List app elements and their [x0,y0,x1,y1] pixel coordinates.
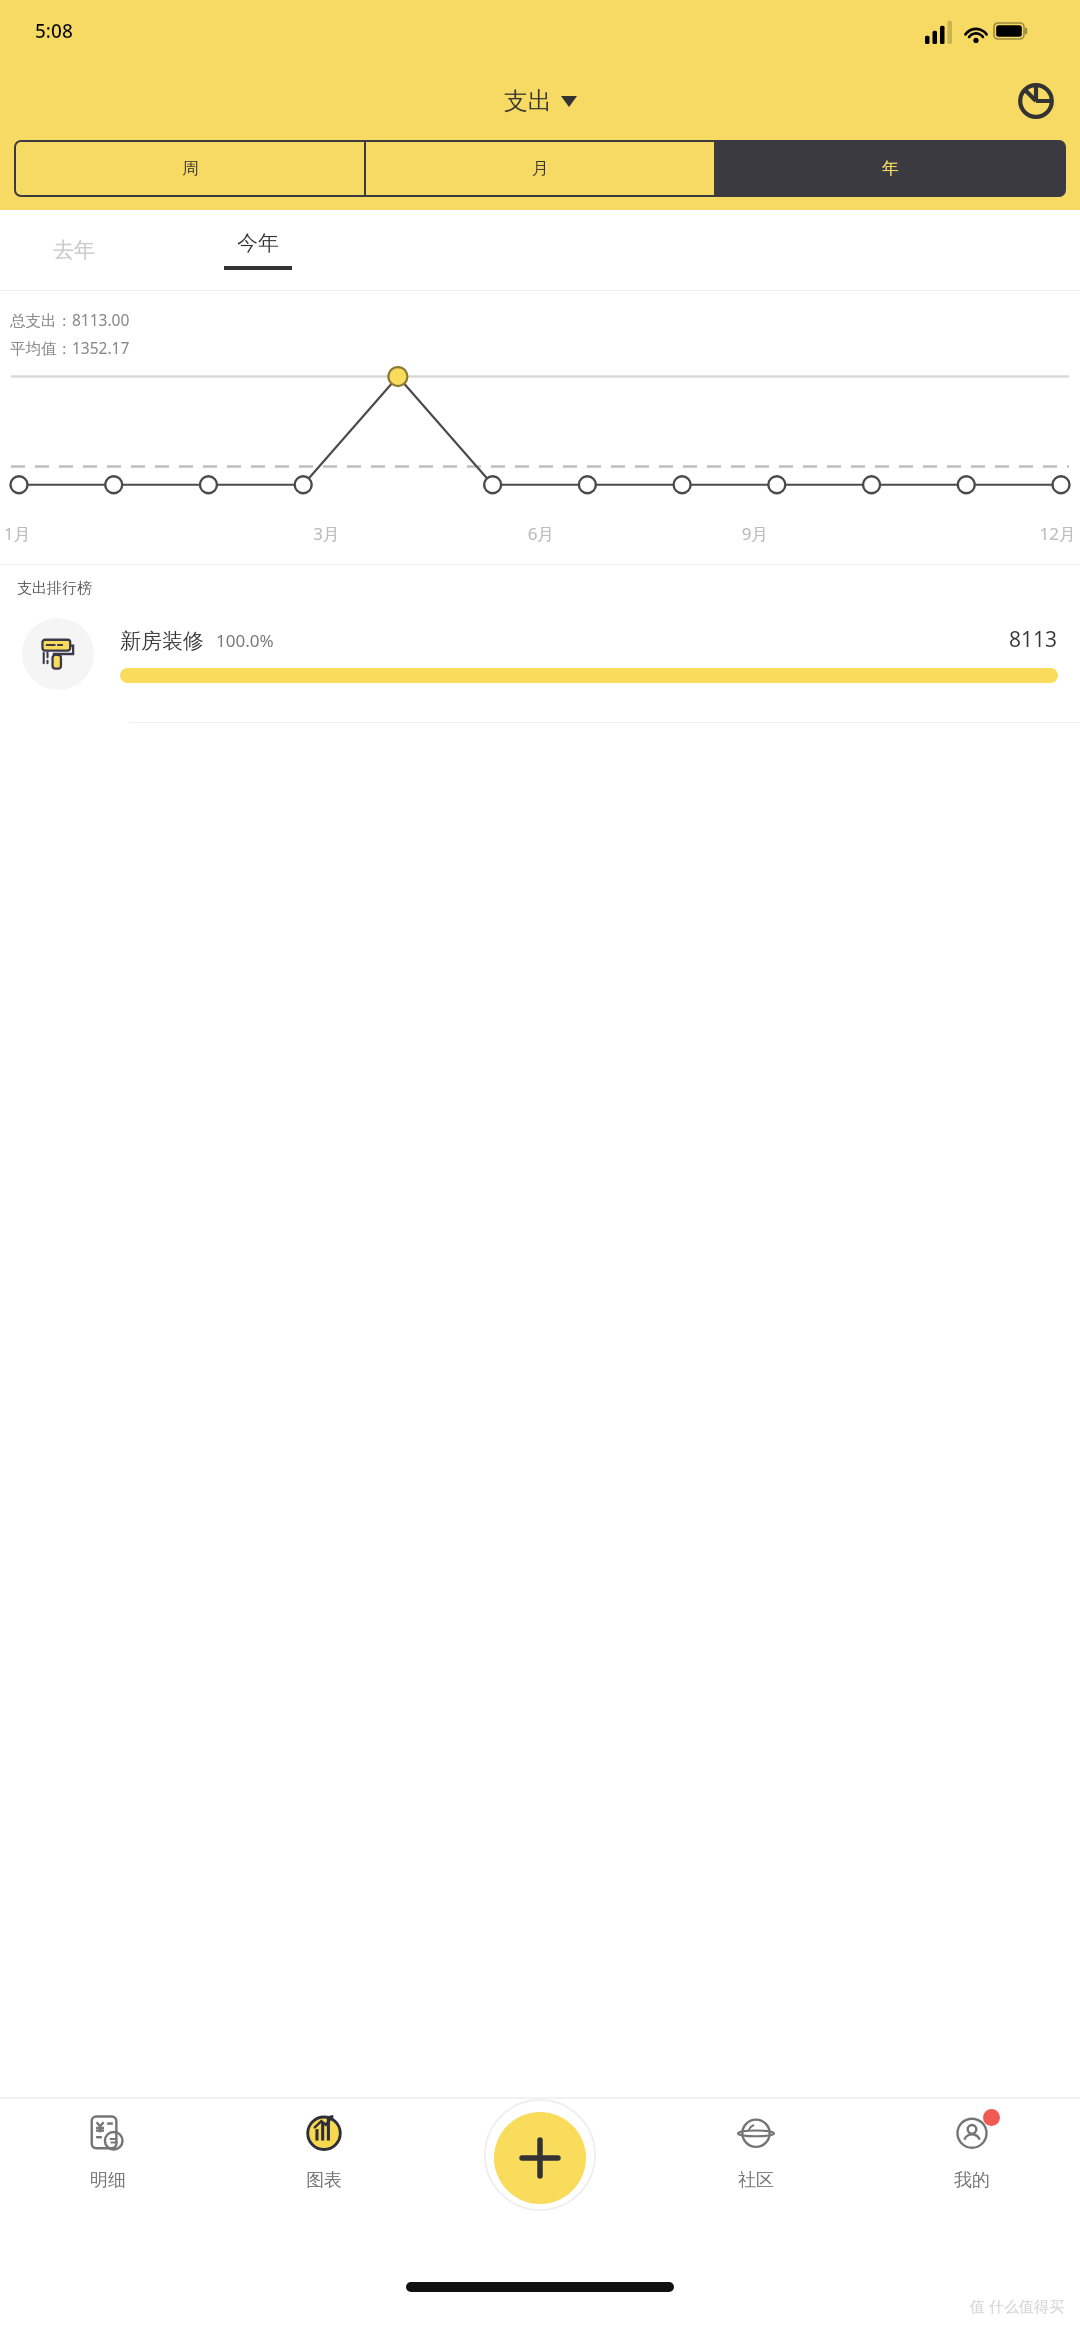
staticText: 9月 [648,522,862,545]
button[interactable]: 新房装修 [0,618,1080,723]
button[interactable]: 我的 [864,2113,1080,2272]
button[interactable]: 月 [366,142,714,195]
staticText: 1月 [4,522,219,545]
staticText: 我的 [954,2169,990,2192]
staticText: 明细 [90,2169,126,2192]
staticText: 社区 [738,2169,774,2192]
staticText: 3月 [219,522,434,545]
staticText: 月 [532,158,549,179]
button[interactable]: 年 [716,142,1064,195]
button[interactable]: 记账 Add record [494,2112,586,2204]
button[interactable]: 支出 [496,82,585,120]
button[interactable]: 明细 [0,2113,216,2272]
button[interactable]: 社区 [648,2113,864,2272]
button[interactable]: 图表 [216,2113,432,2272]
staticText: 今年 [237,230,279,256]
staticText: 5:08 [35,18,73,44]
button[interactable]: 今年 [194,210,322,290]
button[interactable]: Pie chart statistics [1010,75,1062,127]
staticText: 周 [182,158,199,179]
staticText: 100.0% [216,629,274,652]
staticText: 8113 [1009,625,1058,654]
staticText: 去年 [53,237,95,263]
button[interactable]: 周 [16,142,364,195]
staticText: 新房装修 [120,628,204,654]
staticText: 支出 [504,86,552,116]
button[interactable]: 去年 [10,210,138,290]
staticText: 平均值：1352.17 [10,337,130,358]
staticText: 总支出：8113.00 [10,309,130,330]
staticText: 图表 [306,2169,342,2192]
staticText: 值 什么值得买 [970,2296,1064,2316]
staticText: 年 [882,158,899,179]
staticText: 记账 [522,2179,558,2202]
staticText: 12月 [862,522,1076,545]
staticText: 6月 [434,522,648,545]
staticText: 支出排行榜 [17,579,92,598]
